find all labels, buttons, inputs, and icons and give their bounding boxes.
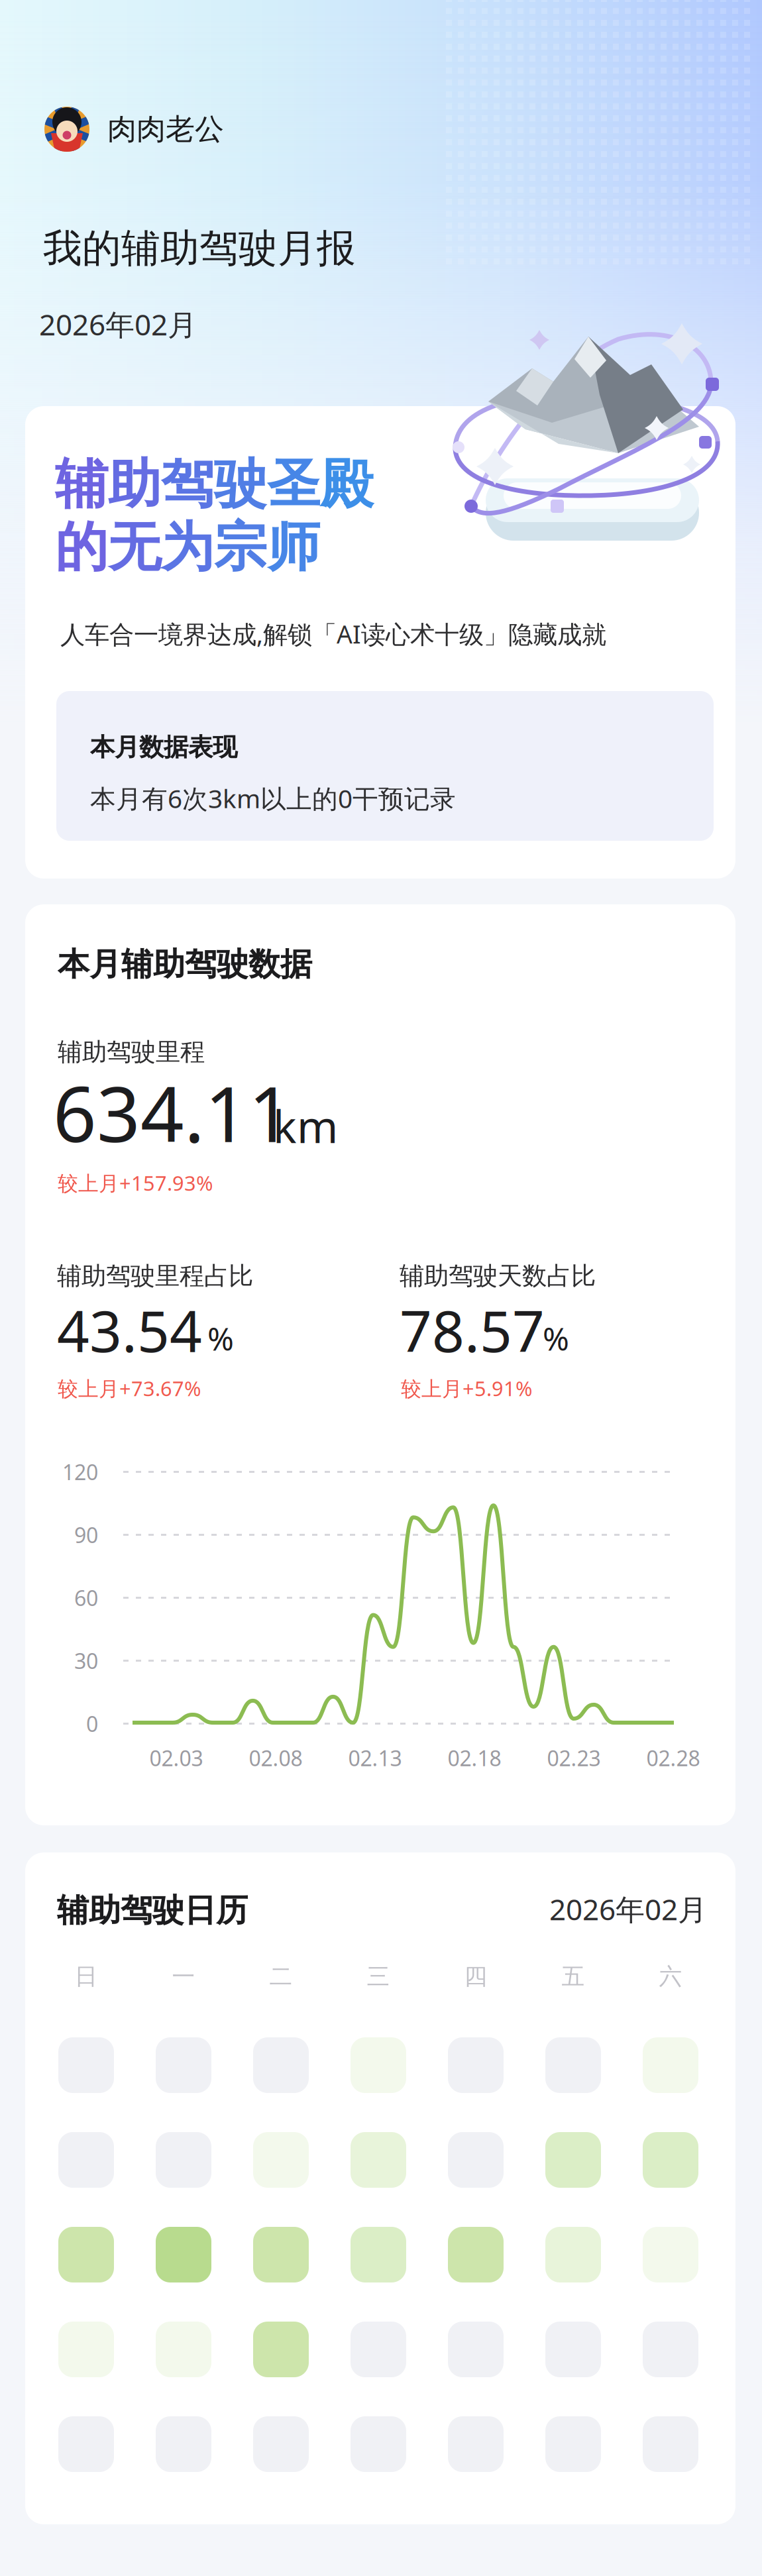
staticText: 634.11: [53, 1062, 292, 1163]
staticText: 日: [75, 1962, 98, 1991]
staticText: 02.18: [448, 1744, 501, 1772]
staticText: 师: [267, 515, 320, 580]
staticText: 较上月+157.93%: [58, 1169, 213, 1196]
staticText: 人车合一境界达成,解锁「AI读心术十级」隐藏成就: [60, 617, 606, 650]
staticText: 一: [172, 1962, 195, 1991]
staticText: 辅助驾驶里程: [58, 1037, 205, 1067]
staticText: 0: [86, 1710, 98, 1738]
staticText: %: [207, 1317, 234, 1359]
staticText: 我的辅助驾驶月报: [43, 225, 356, 272]
staticText: 二: [269, 1962, 293, 1991]
staticText: 02.03: [149, 1744, 203, 1772]
staticText: 30: [74, 1647, 98, 1675]
staticText: 辅: [55, 452, 108, 517]
staticText: 43.54: [57, 1293, 202, 1368]
staticText: 辅助驾驶日历: [57, 1891, 248, 1930]
staticText: %: [543, 1317, 569, 1359]
staticText: 78.57: [400, 1293, 545, 1368]
staticText: 为: [161, 515, 214, 580]
staticText: 三: [367, 1962, 390, 1991]
staticText: 肉肉老公: [107, 111, 224, 147]
staticText: 90: [74, 1521, 98, 1549]
staticText: 02.08: [249, 1744, 302, 1772]
staticText: 本月有6次3km以上的0干预记录: [90, 781, 456, 815]
staticText: 五: [562, 1962, 585, 1991]
staticText: 辅助驾驶里程占比: [57, 1261, 253, 1291]
staticText: 圣: [267, 452, 320, 517]
staticText: 殿: [320, 452, 373, 517]
staticText: 本月辅助驾驶数据: [58, 945, 312, 984]
staticText: km: [273, 1097, 338, 1155]
staticText: 驾: [161, 452, 214, 517]
staticText: 辅助驾驶天数占比: [400, 1261, 596, 1291]
staticText: 02.13: [348, 1744, 402, 1772]
staticText: 宗: [214, 515, 267, 580]
staticText: 无: [108, 515, 161, 580]
staticText: 较上月+73.67%: [58, 1375, 201, 1402]
staticText: 2026年02月: [39, 305, 197, 343]
staticText: 助: [108, 452, 161, 517]
staticText: 四: [464, 1962, 487, 1991]
staticText: 120: [62, 1458, 98, 1486]
staticText: 驶: [214, 452, 267, 517]
staticText: 的: [55, 515, 108, 580]
staticText: 本月数据表现: [90, 732, 237, 763]
staticText: 2026年02月: [549, 1890, 707, 1928]
staticText: 较上月+5.91%: [401, 1375, 532, 1402]
staticText: 02.28: [646, 1744, 700, 1772]
staticText: 六: [659, 1962, 682, 1991]
button[interactable]: 肉肉老公: [44, 106, 224, 152]
staticText: 02.23: [547, 1744, 601, 1772]
staticText: 60: [74, 1584, 98, 1612]
